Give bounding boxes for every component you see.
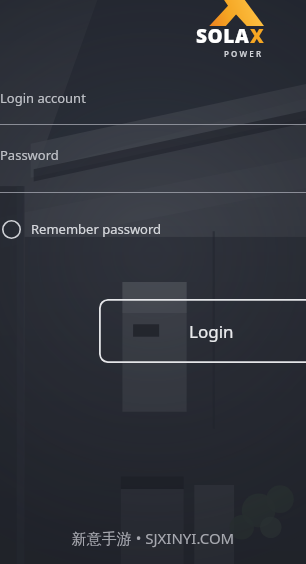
button[interactable]: Login account	[0, 0, 306, 124]
staticText: Remember password	[31, 220, 162, 238]
staticText: POWER	[224, 48, 264, 59]
other: SolaX Power logo	[196, 0, 306, 52]
staticText: X	[250, 23, 264, 49]
staticText: Login	[189, 320, 234, 343]
staticText: SOLA	[196, 23, 250, 49]
button[interactable]: Login	[99, 299, 306, 363]
button[interactable]: Remember password	[0, 193, 306, 265]
staticText: Password	[0, 146, 59, 164]
button[interactable]: Password	[0, 125, 306, 192]
staticText: 新意手游 • SJXINYI.COM	[0, 528, 306, 548]
staticText: Login account	[0, 89, 86, 107]
